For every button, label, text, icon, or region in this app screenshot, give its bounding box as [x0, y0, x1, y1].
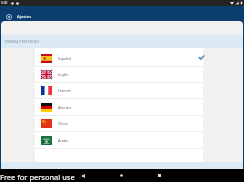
button[interactable]: Árabe — [35, 132, 203, 148]
staticText: Español — [58, 56, 72, 61]
button[interactable]: Chino — [35, 115, 203, 131]
button[interactable]: Cerrar — [3, 11, 14, 22]
staticText: Inglés — [58, 72, 69, 77]
button[interactable]: Español — [35, 50, 203, 66]
staticText: Chino — [58, 121, 68, 126]
button[interactable]: Francés — [35, 82, 203, 98]
button[interactable]: Inglés — [35, 66, 203, 82]
staticText: Árabe — [58, 138, 68, 143]
button[interactable]: Home — [116, 169, 126, 182]
staticText: Free for personal use — [0, 172, 75, 182]
staticText: Alemán — [58, 105, 71, 110]
button[interactable]: Back — [78, 169, 88, 182]
button[interactable]: Alemán — [35, 99, 203, 115]
button[interactable]: Recents — [154, 169, 164, 182]
staticText: IDIOMA PREFERIDO — [5, 40, 39, 44]
staticText: Ajustes — [17, 14, 32, 20]
staticText: Francés — [58, 88, 71, 93]
staticText: 9:30 — [1, 1, 8, 5]
